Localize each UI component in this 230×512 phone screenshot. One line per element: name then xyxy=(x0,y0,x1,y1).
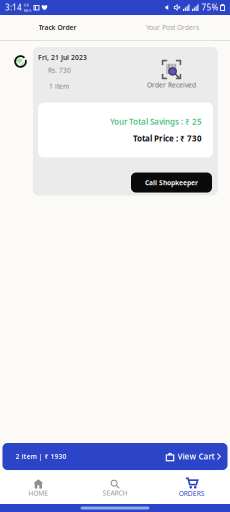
staticText: Total Price : ₹ 730 xyxy=(133,133,202,144)
button[interactable]: SEARCH xyxy=(77,471,153,504)
staticText: Fri, 21 Jul 2023 xyxy=(38,53,87,62)
staticText: Your Post Orders xyxy=(146,23,199,32)
staticText: Order Received xyxy=(147,80,196,89)
staticText: SEARCH xyxy=(102,489,127,497)
staticText: 1 item xyxy=(49,82,69,91)
staticText: 2 item | ₹ 1930 xyxy=(15,452,66,461)
button[interactable]: Track Order xyxy=(0,15,115,40)
button[interactable]: Your Post Orders xyxy=(115,15,230,40)
staticText: 3:14 xyxy=(5,2,22,13)
button[interactable]: 2 item | ₹ 1930 xyxy=(2,443,227,470)
staticText: Track Order xyxy=(38,23,76,32)
button[interactable]: ORDERS xyxy=(153,471,230,504)
staticText: 75% xyxy=(201,2,218,13)
staticText: Call Shopkeeper xyxy=(145,178,198,187)
button[interactable]: Call Shopkeeper xyxy=(131,173,212,193)
staticText: 4.8 KB/s xyxy=(23,2,31,13)
staticText: HOME xyxy=(28,489,48,498)
button[interactable]: HOME xyxy=(0,471,77,504)
staticText: Rs. 730 xyxy=(48,66,71,75)
staticText: View Cart xyxy=(177,451,214,462)
staticText: ORDERS xyxy=(179,489,205,498)
staticText: Your Total Savings : ₹ 25 xyxy=(110,116,202,127)
